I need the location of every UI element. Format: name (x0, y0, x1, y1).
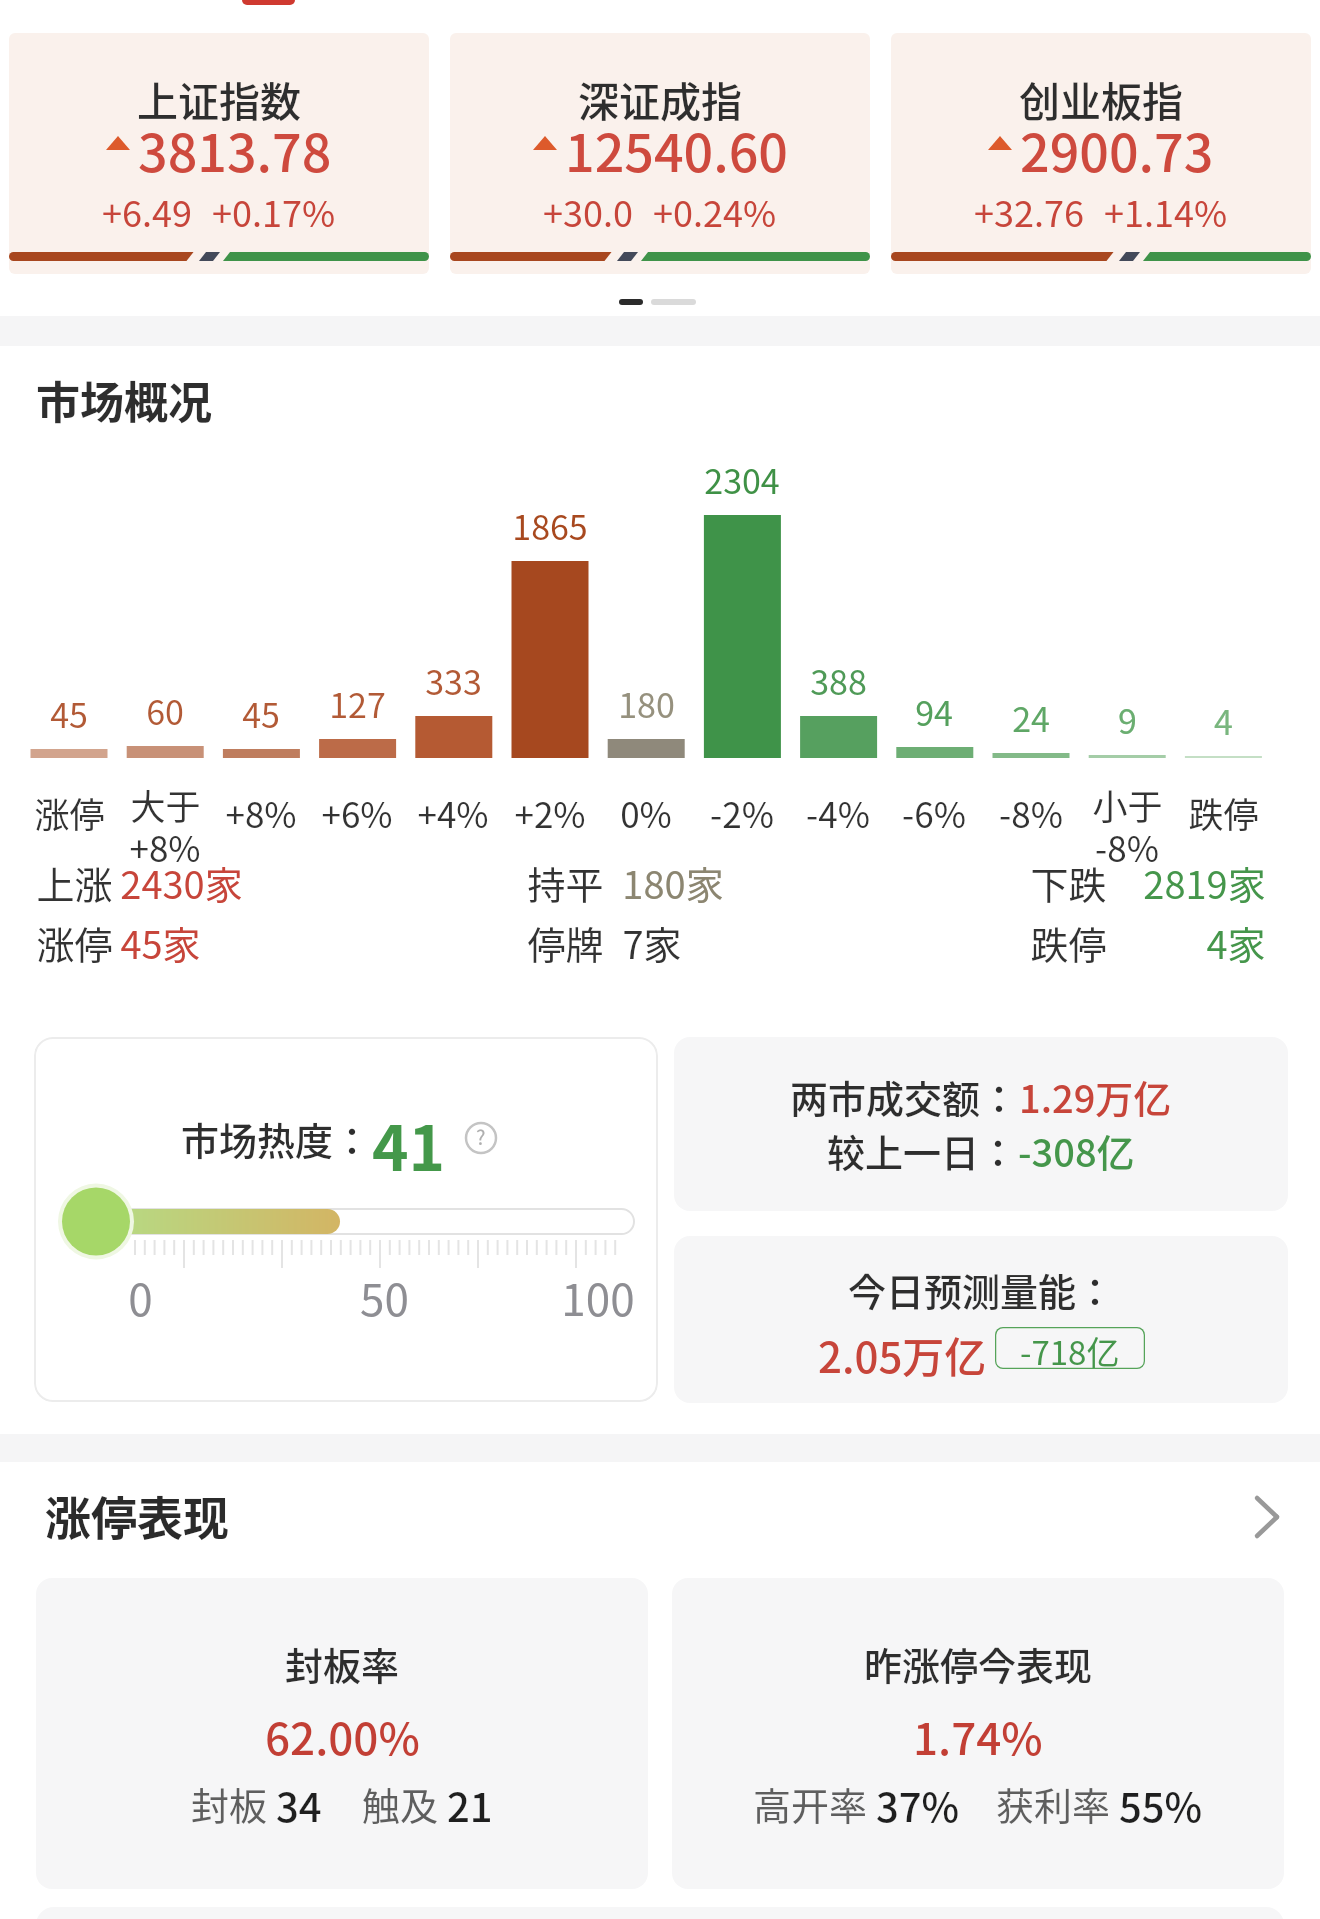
staticText: 45 (50, 689, 88, 731)
staticText: 3813.78 (138, 112, 332, 170)
staticText: 37% (876, 1776, 960, 1822)
staticText: +8% (129, 821, 201, 863)
staticText: 2.05万亿 (818, 1324, 987, 1372)
staticText: 涨停 (34, 787, 105, 829)
staticText: 7家 (622, 915, 682, 957)
staticText: 获利率 (996, 1776, 1119, 1822)
staticText: 100 (561, 1265, 635, 1309)
staticText: 今日预测量能： (848, 1262, 1115, 1306)
staticText: 62.00% (265, 1704, 420, 1756)
staticText: 高开率 (753, 1776, 876, 1822)
staticText: 1865 (512, 501, 588, 543)
staticText: -308亿 (1018, 1123, 1135, 1165)
staticText: 2430家 (120, 855, 243, 897)
staticText: 涨停表现 (45, 1482, 229, 1549)
staticText: 4家 (1206, 915, 1266, 957)
staticText: 0% (620, 787, 672, 829)
button[interactable]: 封板率 (36, 1578, 648, 1889)
button[interactable]: 创业板指 (891, 33, 1311, 274)
staticText: 127 (329, 679, 386, 721)
staticText: 上涨 (36, 855, 113, 897)
staticText: -4% (806, 787, 870, 829)
staticText: 大于 (130, 779, 201, 821)
button[interactable]: 昨涨停今表现 (672, 1578, 1284, 1889)
staticText: 昨涨停今表现 (864, 1636, 1093, 1680)
staticText: 34 (276, 1776, 322, 1822)
staticText: +2% (514, 787, 586, 829)
staticText: 24 (1012, 693, 1050, 735)
staticText: 持平 (527, 855, 604, 897)
staticText: 深证成指 (578, 69, 742, 117)
staticText: 创业板指 (1019, 69, 1183, 117)
staticText: 21 (447, 1776, 493, 1822)
staticText: 1.74% (913, 1704, 1043, 1756)
staticText: 2304 (704, 455, 780, 497)
staticText: 较上一日： (827, 1123, 1018, 1165)
staticText: 下跌 (1030, 855, 1107, 897)
staticText: ? (476, 1122, 486, 1151)
button[interactable]: 市场热度： (34, 1037, 658, 1402)
staticText: 55% (1119, 1776, 1203, 1822)
button[interactable] (619, 299, 643, 305)
staticText: -6% (902, 787, 966, 829)
staticText: 小于 (1092, 779, 1163, 821)
staticText: 停牌 (527, 915, 604, 957)
staticText: 1.29万亿 (1019, 1069, 1172, 1111)
staticText: 60 (146, 686, 184, 728)
staticText: 388 (810, 656, 867, 698)
button[interactable]: 今日预测量能： (674, 1236, 1288, 1403)
staticText: 市场概况 (36, 368, 212, 420)
staticText: 封板 (191, 1776, 276, 1822)
staticText: -8% (999, 787, 1063, 829)
button[interactable] (651, 299, 696, 305)
staticText: 12540.60 (565, 112, 788, 170)
staticText: +8% (225, 787, 297, 829)
staticText: +30.0 (543, 185, 633, 229)
staticText: -718亿 (1020, 1327, 1120, 1369)
button[interactable]: 深证成指 (450, 33, 870, 274)
staticText: 41 (372, 1099, 446, 1161)
staticText: 上证指数 (137, 69, 301, 117)
staticText: 9 (1118, 695, 1137, 737)
staticText: 2900.73 (1020, 112, 1214, 170)
staticText: 180 (618, 679, 675, 721)
staticText: 45家 (120, 915, 201, 957)
button[interactable]: 涨停表现 (0, 1480, 1320, 1550)
staticText: 45 (242, 689, 280, 731)
staticText: 市场热度： (181, 1111, 372, 1166)
staticText: 2819家 (1143, 855, 1266, 897)
staticText: 50 (360, 1265, 409, 1309)
staticText: +6.49 (102, 185, 192, 229)
staticText: 94 (915, 687, 953, 729)
staticText: +6% (321, 787, 393, 829)
staticText: 封板率 (285, 1636, 400, 1680)
staticText: +32.76 (974, 185, 1084, 229)
staticText: 0 (128, 1265, 153, 1309)
staticText: +4% (417, 787, 489, 829)
staticText: 跌停 (1188, 787, 1259, 829)
staticText: 跌停 (1030, 915, 1107, 957)
staticText: -8% (1095, 821, 1159, 863)
staticText: 4 (1214, 696, 1233, 738)
staticText: 333 (425, 656, 482, 698)
staticText: -2% (710, 787, 774, 829)
button[interactable]: 上证指数 (9, 33, 429, 274)
button[interactable]: 两市成交额： (674, 1037, 1288, 1211)
staticText: 触及 (362, 1776, 447, 1822)
staticText: 180家 (622, 855, 724, 897)
staticText: 两市成交额： (790, 1069, 1019, 1111)
staticText: +0.24% (653, 185, 777, 229)
staticText: +0.17% (212, 185, 336, 229)
staticText: +1.14% (1104, 185, 1228, 229)
staticText: 涨停 (36, 915, 113, 957)
